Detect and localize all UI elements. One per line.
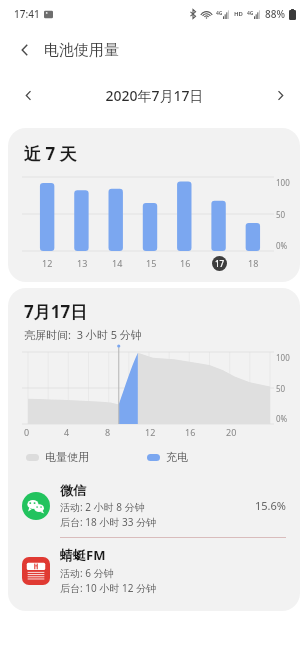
- staticText: 7月17日: [24, 300, 88, 323]
- staticText: 0%: [276, 413, 288, 424]
- button[interactable]: 微信: [8, 474, 300, 537]
- staticText: 50: [276, 383, 286, 394]
- staticText: 12: [145, 426, 156, 438]
- staticText: 88%: [265, 7, 285, 21]
- staticText: 20: [226, 426, 237, 438]
- button[interactable]: 返回: [10, 35, 40, 65]
- staticText: 近 7 天: [24, 142, 77, 165]
- staticText: 15.6%: [255, 498, 286, 513]
- staticText: 后台: 10 小时 12 分钟: [60, 581, 156, 595]
- staticText: 100: [276, 352, 290, 363]
- staticText: 14: [112, 257, 123, 269]
- staticText: 12: [42, 257, 53, 269]
- button[interactable]: 近 7 天: [8, 128, 300, 282]
- staticText: 后台: 18 小时 33 分钟: [60, 515, 156, 529]
- staticText: 电量使用: [45, 450, 89, 464]
- staticText: 8: [105, 426, 111, 438]
- staticText: 4G: [247, 10, 254, 17]
- staticText: 微信: [60, 482, 86, 498]
- staticText: 活动: 6 分钟: [60, 566, 114, 580]
- staticText: 16: [185, 426, 196, 438]
- staticText: 17: [215, 258, 225, 269]
- staticText: HD: [234, 10, 243, 18]
- staticText: 13: [77, 257, 88, 269]
- staticText: 4G: [216, 10, 223, 17]
- staticText: 18: [248, 257, 259, 269]
- button[interactable]: 前一天: [14, 81, 42, 109]
- staticText: 充电: [166, 450, 188, 464]
- staticText: 50: [276, 209, 286, 220]
- staticText: 蜻蜓FM: [60, 546, 106, 564]
- staticText: 0%: [276, 240, 288, 251]
- staticText: 电池使用量: [44, 41, 119, 60]
- button[interactable]: 蜻蜓FM: [8, 538, 300, 603]
- staticText: 活动: 2 小时 8 分钟: [60, 500, 145, 514]
- staticText: 亮屏时间: 3 小时 5 分钟: [24, 327, 142, 342]
- staticText: 17:41: [14, 7, 40, 21]
- staticText: 15: [146, 257, 157, 269]
- staticText: 0: [24, 426, 30, 438]
- staticText: 2020年7月17日: [105, 86, 204, 105]
- button[interactable]: 后一天: [266, 81, 294, 109]
- staticText: 100: [276, 177, 290, 188]
- staticText: 4: [64, 426, 70, 438]
- staticText: 16: [180, 257, 191, 269]
